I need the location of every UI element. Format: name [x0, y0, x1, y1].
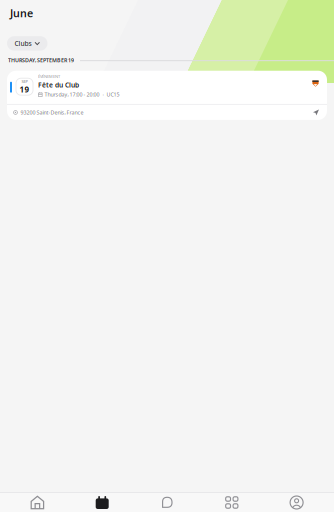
staticText: ÉVÉNEMENT	[38, 74, 60, 79]
staticText: 19	[19, 84, 29, 95]
staticText: Fête du Club	[38, 80, 79, 89]
staticText: SEP	[21, 79, 27, 84]
button[interactable]: Profile	[264, 493, 329, 512]
staticText: Clubs	[14, 39, 31, 48]
button[interactable]: Calendar	[70, 493, 135, 512]
button[interactable]: Messages	[135, 493, 199, 512]
button[interactable]: Home	[5, 493, 70, 512]
button[interactable]: Clubs	[7, 36, 47, 51]
button[interactable]: Discover	[199, 493, 264, 512]
staticText: Thursday, 17:00 - 20:00 · UC15	[45, 91, 120, 98]
staticText: 93200 Saint-Denis, France	[20, 109, 83, 116]
button[interactable]: SEP	[7, 71, 327, 120]
staticText: THURSDAY, SEPTEMBER 19	[8, 57, 74, 64]
staticText: June	[10, 6, 33, 20]
